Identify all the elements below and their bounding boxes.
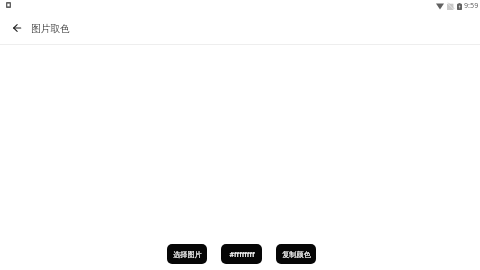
- staticText: 9:59: [464, 0, 479, 10]
- button[interactable]: #ffffffff: [221, 244, 262, 264]
- button[interactable]: 复制颜色: [276, 244, 316, 264]
- button[interactable]: Back: [3, 14, 30, 41]
- staticText: 复制颜色: [282, 250, 311, 259]
- staticText: 选择图片: [173, 250, 202, 259]
- button[interactable]: 选择图片: [167, 244, 207, 264]
- staticText: 图片取色: [31, 23, 70, 35]
- staticText: #ffffffff: [229, 249, 255, 259]
